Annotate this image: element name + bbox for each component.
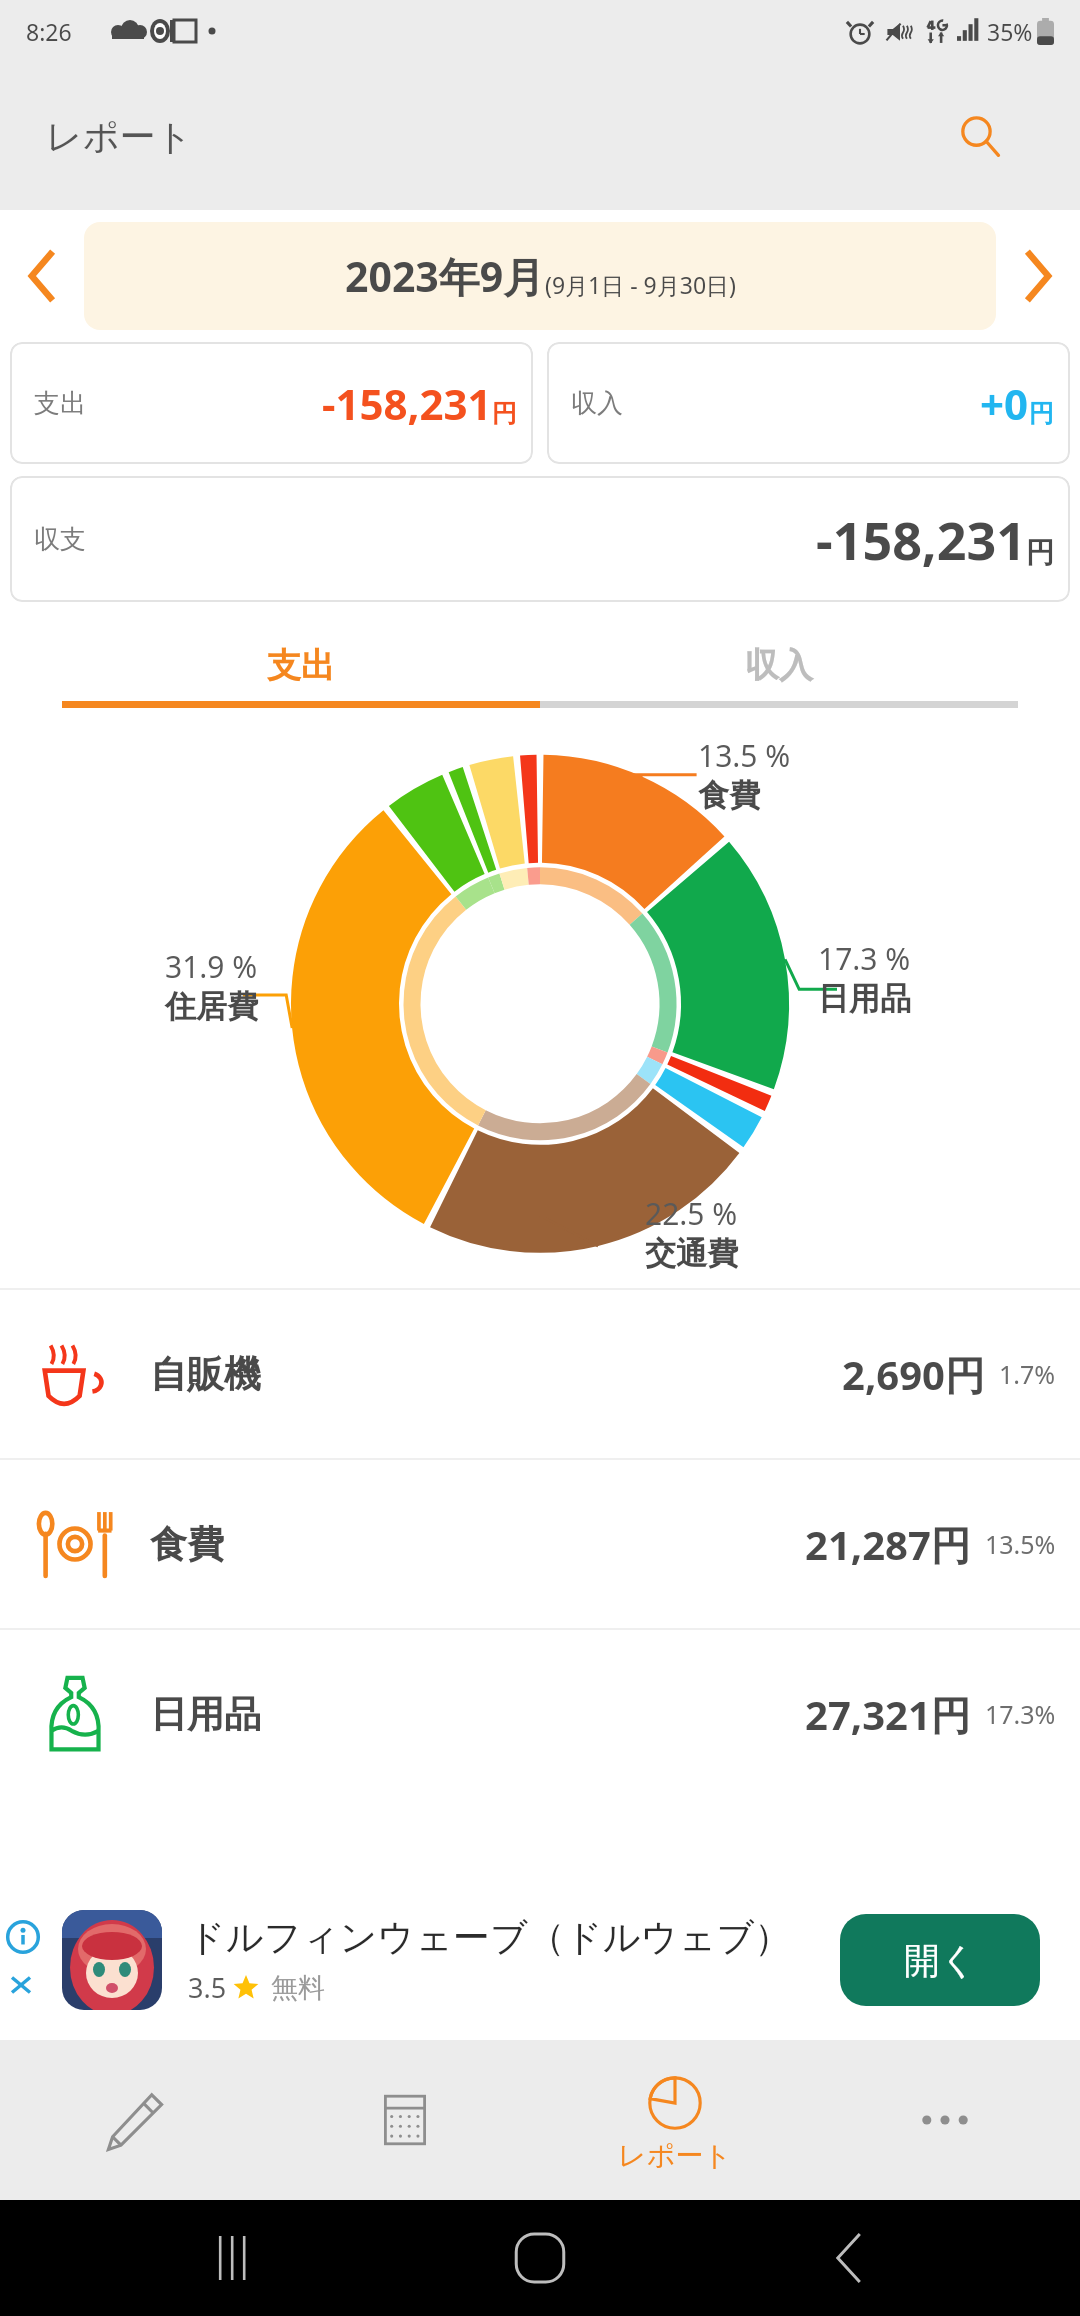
staticText: 13.5 %	[698, 735, 791, 776]
staticText: 1.7%	[999, 1357, 1056, 1391]
staticText: 17.3 %	[818, 938, 911, 979]
staticText: 円	[1026, 535, 1054, 570]
button[interactable]: More	[810, 2040, 1080, 2200]
staticText: 2023年9月	[345, 248, 545, 304]
staticText: +0	[980, 375, 1029, 432]
staticText: 交通費	[645, 1234, 738, 1273]
staticText: 8:26	[26, 16, 72, 47]
staticText: 3.5	[188, 1969, 227, 2006]
staticText: 食費	[150, 1521, 224, 1568]
button[interactable]: 支出	[62, 629, 540, 701]
staticText: 収入	[745, 644, 813, 687]
staticText: 支出	[267, 644, 335, 687]
button[interactable]: 支出	[10, 342, 533, 464]
button[interactable]: Input	[0, 2040, 270, 2200]
button[interactable]: 収支	[10, 476, 1070, 602]
button[interactable]: Next month	[996, 210, 1080, 342]
staticText: 2,690円	[842, 1347, 985, 1402]
staticText: 収入	[571, 387, 623, 420]
staticText: 17.3%	[985, 1697, 1056, 1731]
staticText: 食費	[698, 776, 760, 815]
button[interactable]: 開く	[840, 1914, 1040, 2006]
staticText: 住居費	[165, 987, 258, 1026]
other: Close ad	[6, 1970, 36, 2000]
staticText: 無料	[271, 1971, 325, 2005]
button[interactable]: Calendar	[270, 2040, 540, 2200]
staticText: 円	[492, 398, 517, 429]
button[interactable]: 食費	[0, 1460, 1080, 1628]
staticText: 日用品	[150, 1691, 261, 1738]
staticText: 22.5 %	[645, 1193, 738, 1234]
button[interactable]: 収入	[540, 629, 1018, 701]
button[interactable]: Previous month	[0, 210, 84, 342]
button[interactable]: レポート	[540, 2040, 810, 2200]
button[interactable]: 収入	[547, 342, 1070, 464]
staticText: (9月1日 - 9月30日)	[545, 269, 736, 300]
staticText: 27,321円	[805, 1687, 971, 1742]
button[interactable]: Search	[940, 96, 1020, 176]
staticText: 開く	[904, 1938, 977, 1983]
staticText: レポート	[46, 114, 193, 159]
staticText: 自販機	[150, 1351, 261, 1398]
staticText: 円	[1029, 398, 1054, 429]
staticText: 13.5%	[985, 1527, 1056, 1561]
staticText: -158,231	[816, 504, 1026, 575]
button[interactable]: 日用品	[0, 1630, 1080, 1798]
staticText: ドルフィンウェーブ（ドルウェブ）	[188, 1914, 792, 1961]
staticText: -158,231	[322, 375, 492, 432]
staticText: 31.9 %	[165, 946, 258, 987]
staticText: 21,287円	[805, 1517, 971, 1572]
staticText: 35%	[987, 16, 1033, 47]
staticText: レポート	[618, 2138, 732, 2173]
button[interactable]: 自販機	[0, 1290, 1080, 1458]
button[interactable]: 2023年9月	[84, 222, 996, 330]
staticText: 収支	[34, 523, 86, 556]
staticText: 日用品	[818, 979, 911, 1018]
staticText: 支出	[34, 387, 86, 420]
